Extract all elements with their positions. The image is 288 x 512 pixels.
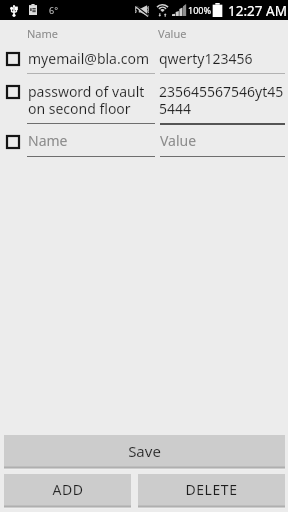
button[interactable]: Save bbox=[4, 435, 285, 466]
staticText: 12:27 AM bbox=[228, 2, 287, 20]
staticText: Save bbox=[128, 441, 161, 461]
staticText: Name bbox=[28, 131, 68, 150]
button[interactable]: ADD bbox=[4, 474, 131, 505]
staticText: Value bbox=[158, 26, 187, 41]
staticText: Value bbox=[160, 131, 197, 150]
staticText: ADD bbox=[52, 480, 84, 499]
staticText: 100% bbox=[188, 4, 211, 16]
button[interactable]: Select entry bbox=[6, 135, 20, 149]
staticText: 235645567546yt455444 bbox=[159, 82, 286, 118]
staticText: password of vault on second floor bbox=[28, 82, 151, 118]
staticText: DELETE bbox=[185, 480, 238, 499]
button[interactable]: Select entry bbox=[6, 52, 20, 66]
staticText: 6° bbox=[49, 4, 59, 16]
staticText: myemail@bla.com bbox=[28, 49, 149, 68]
button[interactable]: DELETE bbox=[138, 474, 285, 505]
staticText: Name bbox=[27, 26, 59, 41]
button[interactable]: Select entry bbox=[6, 85, 20, 99]
staticText: qwerty123456 bbox=[159, 49, 253, 68]
